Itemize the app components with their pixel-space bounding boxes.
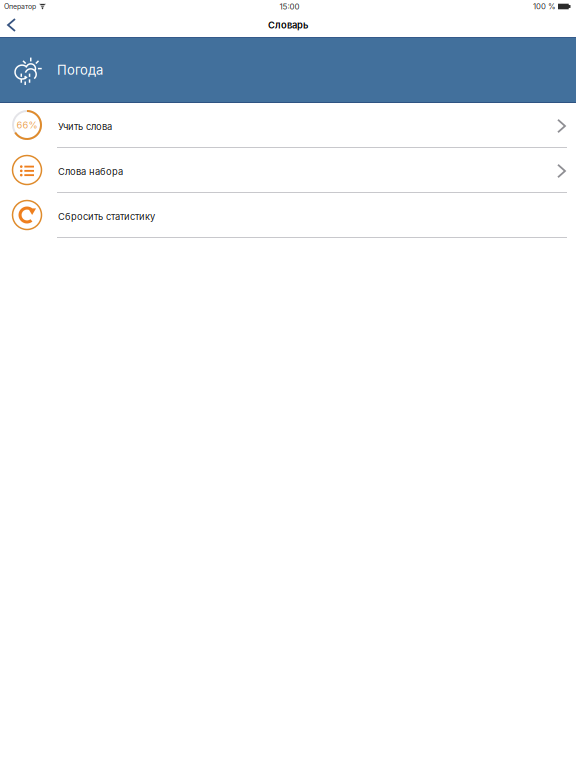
button[interactable]: Погода: [0, 37, 576, 103]
button[interactable]: Слова набора: [0, 148, 576, 193]
button[interactable]: 66%: [0, 103, 576, 148]
staticText: Учить слова: [58, 121, 112, 132]
staticText: Слова набора: [58, 166, 123, 177]
staticText: Словарь: [268, 19, 308, 31]
staticText: Погода: [57, 62, 103, 78]
staticText: 100 %: [533, 2, 556, 11]
staticText: 15:00: [279, 2, 299, 11]
staticText: Сбросить статистику: [58, 211, 155, 222]
button[interactable]: Сбросить статистику: [0, 193, 576, 238]
staticText: Оператор: [4, 2, 36, 11]
staticText: 66%: [16, 119, 37, 131]
button[interactable]: Back: [0, 14, 26, 36]
